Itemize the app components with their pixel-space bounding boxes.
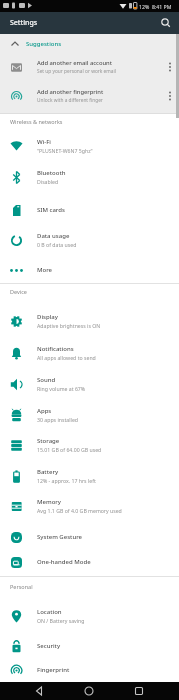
staticText: Personal [10, 583, 33, 590]
button[interactable]: Add another email account [0, 53, 179, 81]
staticText: "PLUSNET-W6N7 5ghz" [37, 147, 93, 154]
button[interactable]: Wi-Fi [0, 132, 179, 160]
staticText: Add another email account [37, 59, 112, 67]
button[interactable]: Data usage [0, 226, 179, 254]
staticText: Suggestions [26, 40, 62, 48]
staticText: 12% - approx. 17 hrs left [37, 477, 96, 484]
button[interactable]: Add another fingerprint [0, 82, 179, 110]
staticText: Set up your personal or work email [37, 68, 116, 75]
staticText: Bluetooth [37, 169, 66, 177]
staticText: 0 B of data used [37, 241, 77, 248]
staticText: Avg 1.1 GB of 4.0 GB memory used [37, 507, 122, 514]
staticText: Device [10, 288, 27, 295]
button[interactable]: Suggestions [0, 38, 179, 50]
staticText: Fingerprint [37, 666, 70, 674]
button[interactable]: Notifications [0, 339, 179, 367]
staticText: Add another fingerprint [37, 88, 104, 96]
button[interactable]: Battery [0, 462, 179, 490]
staticText: Disabled [37, 178, 59, 185]
staticText: Adaptive brightness is ON [37, 322, 101, 329]
button[interactable]: Memory [0, 492, 179, 520]
button[interactable] [132, 684, 146, 698]
staticText: Battery [37, 468, 59, 476]
staticText: System Gesture [37, 533, 83, 541]
button[interactable]: Apps [0, 401, 179, 429]
button[interactable]: One-handed Mode [0, 548, 179, 576]
staticText: Ring volume at 67% [37, 385, 86, 392]
button[interactable]: Settings [0, 12, 179, 34]
staticText: Settings [10, 18, 38, 28]
button[interactable]: More [0, 256, 179, 284]
staticText: SIM cards [37, 206, 65, 214]
button[interactable]: Sound [0, 370, 179, 398]
staticText: More [37, 266, 53, 274]
button[interactable]: Location [0, 602, 179, 630]
staticText: Wireless & networks [10, 118, 63, 125]
staticText: Security [37, 642, 61, 650]
staticText: Unlock with a different finger [37, 97, 103, 104]
button[interactable]: Storage [0, 431, 179, 459]
button[interactable] [82, 684, 96, 698]
staticText: Location [37, 608, 62, 616]
staticText: One-handed Mode [37, 558, 91, 566]
button[interactable]: Fingerprint [0, 656, 179, 684]
button[interactable]: Display [0, 307, 179, 335]
staticText: Data usage [37, 232, 70, 240]
staticText: Display [37, 313, 58, 321]
staticText: ON / Battery saving [37, 617, 85, 624]
staticText: Storage [37, 437, 60, 445]
button[interactable]: SIM cards [0, 196, 179, 224]
staticText: All apps allowed to send [37, 354, 96, 361]
button[interactable]: System Gesture [0, 523, 179, 551]
staticText: Sound [37, 376, 56, 384]
button[interactable]: Bluetooth [0, 163, 179, 191]
button[interactable] [32, 684, 46, 698]
staticText: 12% 8:41 PM [139, 3, 172, 10]
button[interactable] [159, 16, 173, 30]
staticText: Wi-Fi [37, 138, 51, 146]
staticText: Apps [37, 407, 52, 415]
staticText: Memory [37, 498, 62, 506]
staticText: 15.01 GB of 64.00 GB used [37, 446, 102, 453]
staticText: Notifications [37, 345, 74, 353]
button[interactable]: Security [0, 632, 179, 660]
staticText: 30 apps installed [37, 416, 79, 423]
